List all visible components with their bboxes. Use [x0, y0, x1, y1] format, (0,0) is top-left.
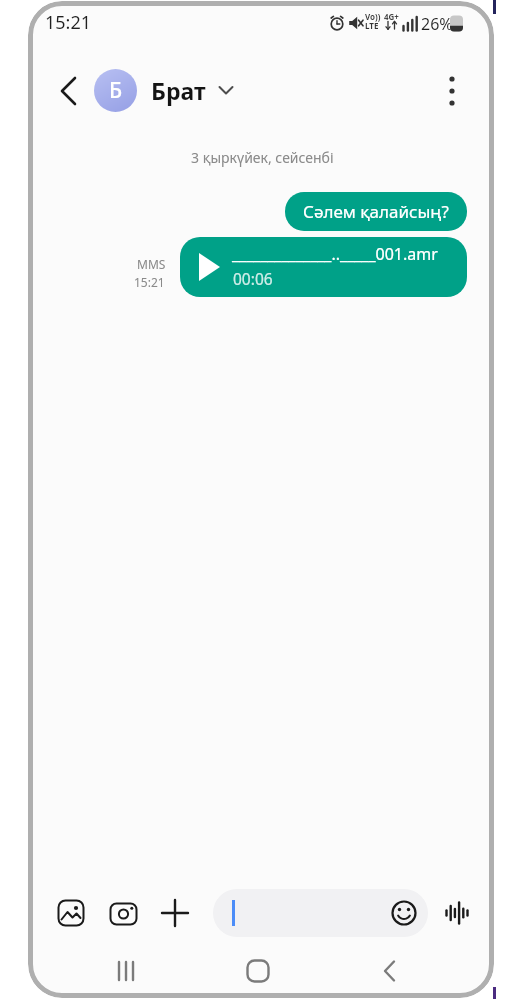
button[interactable]: Брат [0, 0, 55, 31]
button[interactable]: ______________.._____001.amr [180, 237, 467, 297]
button[interactable] [378, 959, 402, 983]
button[interactable] [161, 899, 189, 927]
staticText: 3 қыркүйек, сейсенбі [191, 148, 334, 167]
staticText: 15:21 [45, 10, 92, 35]
button[interactable]: Б [94, 69, 137, 112]
button[interactable] [57, 899, 85, 927]
button[interactable] [213, 889, 428, 937]
staticText: Б [109, 76, 123, 105]
button[interactable] [109, 899, 138, 928]
button[interactable] [444, 74, 460, 108]
staticText: 15:21 [134, 274, 165, 290]
button[interactable]: Сәлем қалайсың? [285, 192, 467, 231]
staticText: ______________.._____001.amr [232, 243, 438, 265]
button[interactable] [444, 899, 472, 927]
button[interactable] [244, 959, 272, 983]
staticText: Vo)) [365, 11, 381, 22]
button[interactable] [390, 899, 418, 927]
staticText: 00:06 [233, 268, 273, 289]
button[interactable] [58, 76, 80, 106]
button[interactable] [112, 959, 140, 983]
staticText: Сәлем қалайсың? [303, 200, 449, 223]
staticText: MMS [137, 256, 166, 272]
staticText: LTE [365, 20, 379, 31]
staticText: 26% [421, 13, 453, 35]
staticText: 4G+ [384, 11, 399, 22]
